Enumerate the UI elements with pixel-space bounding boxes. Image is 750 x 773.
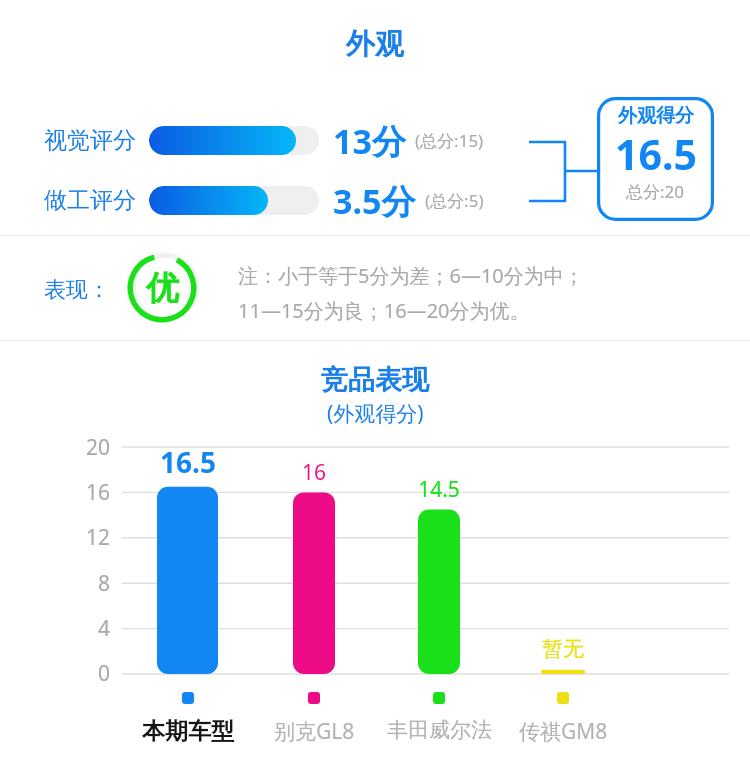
staticText: 16	[254, 458, 374, 487]
staticText: 16.5	[615, 126, 697, 182]
staticText: 暂无	[503, 636, 623, 662]
button[interactable]: 丰田威尔法	[374, 692, 504, 743]
button[interactable]: 做工评分	[44, 178, 484, 222]
staticText: 16	[72, 478, 110, 507]
staticText: 本期车型	[142, 717, 234, 746]
button[interactable]: 视觉评分	[44, 118, 484, 162]
staticText: 注：小于等于5分为差；6—10分为中；	[238, 262, 584, 289]
staticText: 总分:20	[626, 180, 685, 203]
staticText: 11—15分为良；16—20分为优。	[238, 297, 530, 324]
staticText: 0	[72, 659, 110, 688]
staticText: 8	[72, 569, 110, 598]
button[interactable]: 传祺GM8	[498, 692, 628, 746]
staticText: 13分	[333, 118, 406, 162]
staticText: (总分:15)	[415, 129, 484, 152]
staticText: 竞品表现	[321, 363, 429, 397]
staticText: 表现：	[44, 276, 110, 304]
staticText: 视觉评分	[44, 126, 136, 155]
staticText: 20	[72, 433, 110, 462]
staticText: 外观得分	[618, 104, 694, 128]
staticText: 做工评分	[44, 186, 136, 215]
button[interactable]: 外观得分	[597, 97, 714, 221]
staticText: (外观得分)	[327, 399, 424, 428]
staticText: 别克GL8	[274, 717, 355, 746]
staticText: 12	[72, 523, 110, 552]
staticText: 14.5	[379, 475, 499, 504]
staticText: 外观	[0, 26, 750, 63]
button[interactable]: 别克GL8	[249, 692, 379, 746]
button[interactable]: 本期车型	[123, 692, 253, 746]
staticText: 丰田威尔法	[387, 717, 492, 743]
staticText: 4	[72, 614, 110, 643]
staticText: 3.5分	[333, 178, 416, 222]
staticText: 优	[146, 267, 179, 309]
staticText: 16.5	[128, 443, 248, 481]
other: 表现：优	[127, 253, 197, 323]
staticText: 传祺GM8	[519, 717, 608, 746]
staticText: (总分:5)	[425, 189, 484, 212]
